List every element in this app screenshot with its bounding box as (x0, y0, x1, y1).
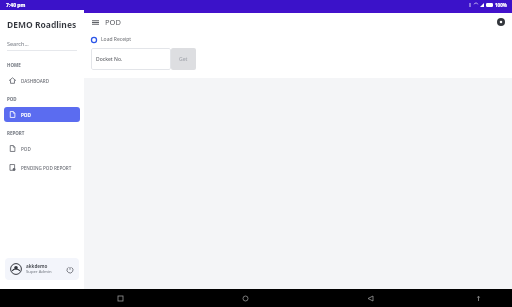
button[interactable]: Docket No. (91, 48, 171, 70)
staticText: POD (21, 146, 31, 152)
staticText: POD (21, 112, 31, 118)
staticText: Load Receipt (101, 36, 132, 43)
staticText: DASHBOARD (21, 78, 50, 84)
staticText: PENDING POD REPORT (21, 165, 72, 171)
staticText: DEMO Roadlines (7, 19, 77, 31)
staticText: akkdemo (26, 263, 48, 269)
button[interactable]: Home (239, 292, 251, 304)
button[interactable]: Get (171, 48, 196, 70)
staticText: Docket No. (96, 56, 123, 63)
button[interactable]: Hide keyboard (472, 292, 484, 304)
button[interactable]: akkdemo (5, 258, 79, 280)
staticText: POD (105, 17, 121, 27)
button[interactable]: Recents (114, 292, 126, 304)
staticText: 7:40 pm (6, 2, 26, 9)
button[interactable]: Back (364, 292, 376, 304)
button[interactable]: DASHBOARD (4, 73, 80, 88)
staticText: 100% (495, 2, 507, 8)
button[interactable]: PENDING POD REPORT (4, 160, 80, 175)
staticText: HOME (7, 62, 21, 68)
staticText: POD (7, 96, 17, 102)
button[interactable]: POD (4, 141, 80, 156)
staticText: Super Admin (26, 269, 52, 275)
staticText: Get (179, 56, 188, 63)
button[interactable]: Load Receipt (91, 35, 132, 44)
button[interactable]: Log out (65, 265, 74, 274)
staticText: REPORT (7, 130, 25, 136)
button[interactable]: Search... (7, 40, 29, 47)
button[interactable]: Settings (495, 16, 506, 27)
button[interactable]: POD (4, 107, 80, 122)
button[interactable]: Menu (90, 17, 100, 27)
